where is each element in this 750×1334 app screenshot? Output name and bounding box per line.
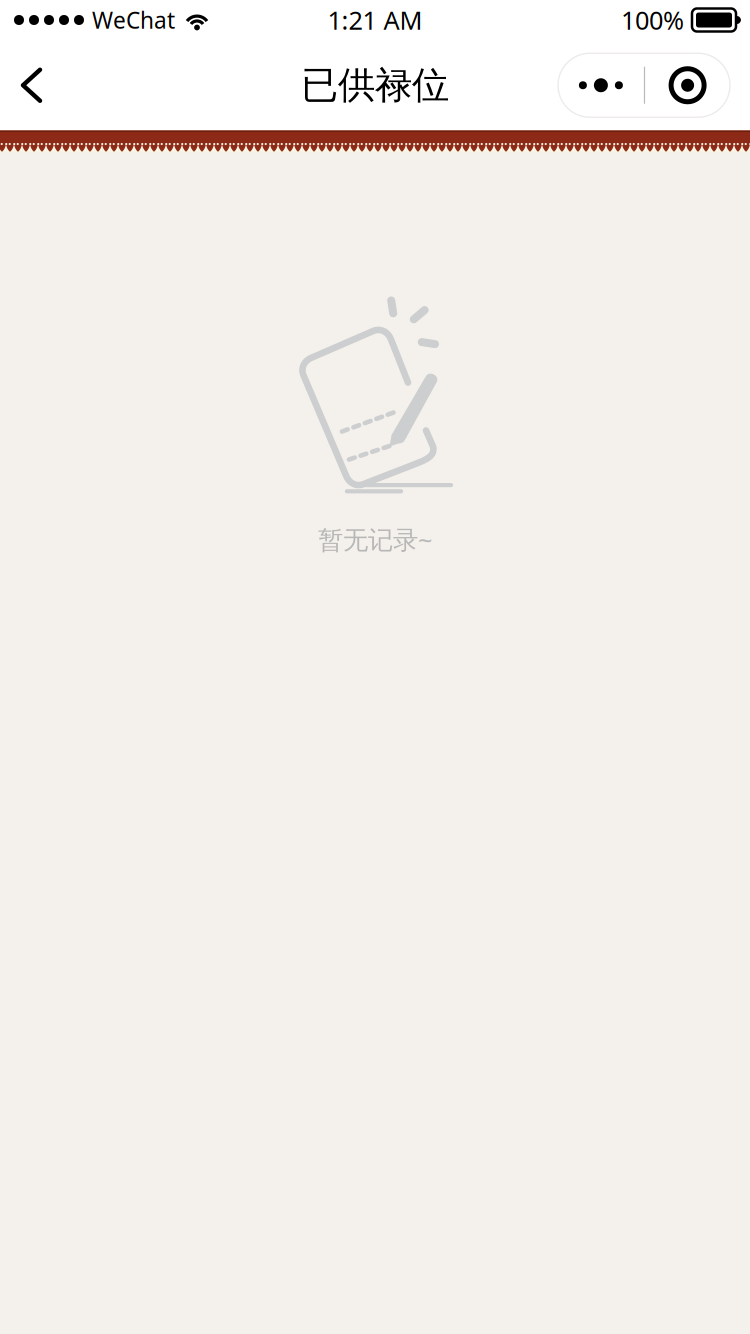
- button[interactable]: Back: [0, 48, 76, 123]
- button[interactable]: More options: [558, 53, 750, 117]
- staticText: WeChat: [92, 5, 175, 35]
- staticText: 已供禄位: [301, 62, 449, 108]
- staticText: 100%: [621, 3, 684, 37]
- staticText: 暂无记录~: [318, 522, 432, 556]
- staticText: 1:21 AM: [327, 3, 422, 37]
